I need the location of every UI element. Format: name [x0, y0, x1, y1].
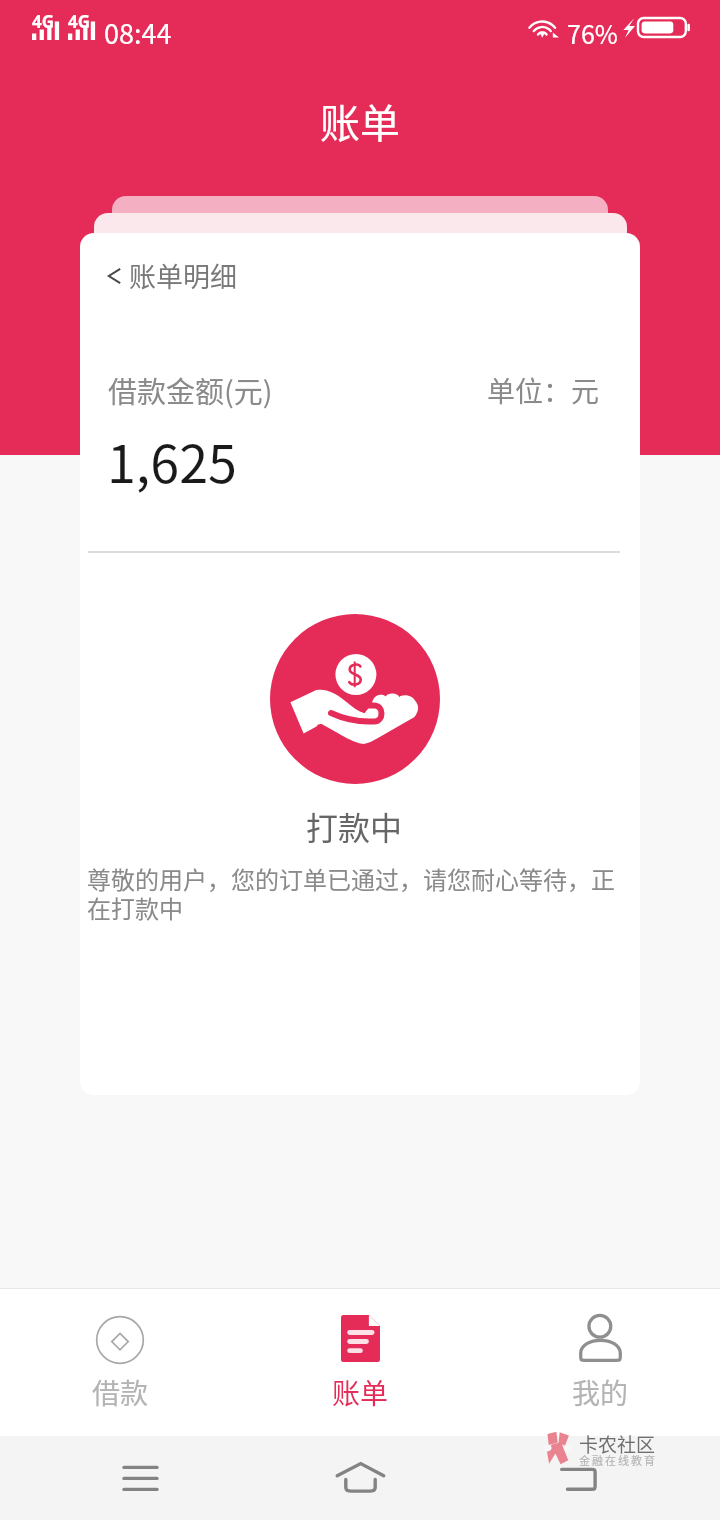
staticText: 借款金额(元) [108, 369, 273, 411]
staticText: 借款 [92, 1372, 149, 1413]
staticText: 账单明细 [129, 256, 237, 295]
staticText: 1,625 [107, 423, 237, 498]
staticText: 4G [32, 10, 55, 33]
other: 我的 [579, 1314, 622, 1362]
staticText: 尊敬的用户，您的订单已通过，请您耐心等待，正在打款中 [87, 861, 621, 925]
staticText: 4G [68, 10, 91, 33]
button[interactable]: 借款 [0, 1289, 240, 1436]
button[interactable]: 账单 [240, 1289, 480, 1436]
button[interactable]: 我的 [480, 1289, 720, 1436]
staticText: 我的 [572, 1372, 629, 1413]
staticText: 打款中 [306, 803, 403, 849]
other: 借款 [95, 1313, 145, 1363]
staticText: 76% [567, 15, 618, 51]
button[interactable]: 账单明细 [106, 252, 239, 299]
staticText: 08:44 [104, 13, 172, 52]
staticText: 单位：元 [487, 370, 600, 411]
other: 账单 [341, 1315, 380, 1362]
staticText: 账单 [320, 92, 400, 150]
staticText: 金融在线教育 [579, 1452, 657, 1468]
staticText: 账单 [332, 1372, 389, 1413]
staticText: 卡农社区 [579, 1430, 656, 1458]
